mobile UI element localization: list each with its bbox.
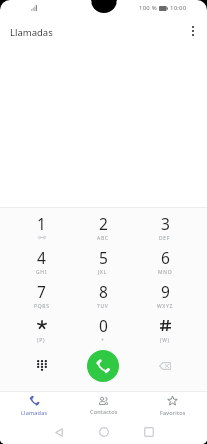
button[interactable]: 4	[11, 245, 72, 279]
staticText: 100 %	[139, 4, 157, 12]
button[interactable]: Home	[81, 420, 126, 444]
staticText: 7	[37, 281, 46, 300]
staticText: 1	[37, 213, 46, 232]
button[interactable]: 7	[11, 279, 72, 313]
staticText: 9	[161, 281, 170, 300]
staticText: 5	[99, 247, 108, 266]
button[interactable]: 1	[11, 211, 72, 245]
button[interactable]: 0	[72, 313, 134, 347]
button[interactable]: 2	[72, 211, 134, 245]
staticText: Llamadas	[21, 409, 48, 416]
button[interactable]: 3	[134, 211, 196, 245]
staticText: PQRS	[34, 303, 50, 310]
button[interactable]: Recent apps	[126, 420, 171, 444]
button[interactable]: 6	[134, 245, 196, 279]
button[interactable]: Contactos	[69, 391, 138, 420]
staticText: 10:00	[170, 4, 187, 12]
staticText: +	[101, 337, 105, 344]
button[interactable]: (P)	[11, 313, 72, 347]
button[interactable]: Show dialpad	[11, 344, 72, 388]
staticText: Favoritos	[160, 409, 186, 416]
staticText: 3	[161, 213, 170, 232]
staticText: 0	[99, 315, 108, 334]
staticText: 2	[99, 213, 108, 232]
button[interactable]: 9	[134, 279, 196, 313]
button[interactable]: Llamadas	[0, 391, 69, 420]
staticText: TUV	[97, 303, 109, 310]
button[interactable]: More options	[179, 16, 207, 46]
button[interactable]: Call	[87, 350, 119, 382]
staticText: (W)	[160, 337, 170, 344]
staticText: 4	[37, 247, 46, 266]
staticText: ABC	[97, 235, 109, 242]
button[interactable]: Favoritos	[138, 391, 207, 420]
staticText: MNO	[158, 269, 173, 276]
staticText: (P)	[37, 337, 46, 344]
staticText: GHI	[36, 269, 48, 276]
staticText: DEF	[159, 235, 171, 242]
staticText: 6	[161, 247, 170, 266]
staticText: Llamadas	[10, 26, 53, 39]
staticText: JKL	[98, 269, 108, 276]
staticText: WXYZ	[157, 303, 174, 310]
button[interactable]: (W)	[134, 313, 196, 347]
button[interactable]: 5	[72, 245, 134, 279]
staticText: 8	[99, 281, 108, 300]
button[interactable]: Delete	[134, 344, 196, 388]
button[interactable]: 8	[72, 279, 134, 313]
staticText: Contactos	[90, 408, 118, 415]
button[interactable]: Back	[37, 420, 81, 444]
